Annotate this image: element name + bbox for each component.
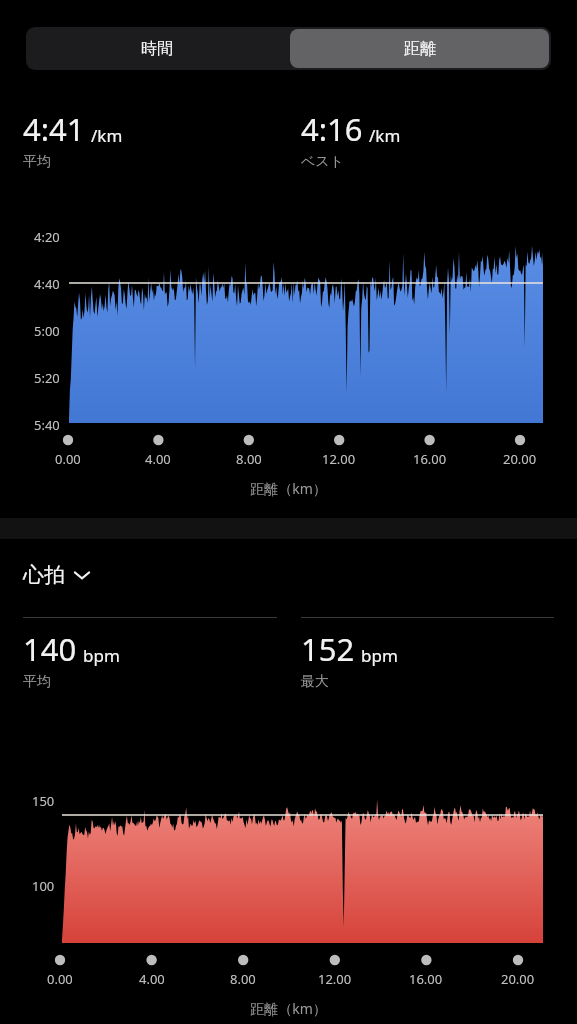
staticText: 心拍	[23, 562, 65, 588]
staticText: 4.00	[139, 970, 165, 988]
staticText: 140	[23, 628, 77, 670]
staticText: 20.00	[501, 970, 535, 988]
staticText: 152	[301, 628, 355, 670]
staticText: 8.00	[230, 970, 256, 988]
staticText: 20.00	[503, 450, 537, 468]
staticText: 平均	[23, 673, 51, 691]
staticText: 16.00	[409, 970, 443, 988]
staticText: 12.00	[318, 970, 352, 988]
staticText: 距離	[404, 39, 436, 59]
staticText: 8.00	[236, 450, 262, 468]
staticText: 5:40	[34, 416, 60, 434]
button[interactable]: 心拍	[23, 562, 99, 588]
staticText: 距離（km）	[250, 999, 327, 1018]
staticText: 12.00	[322, 450, 356, 468]
staticText: bpm	[83, 644, 120, 667]
other: Expand heart rate	[65, 562, 99, 588]
staticText: 4:20	[34, 228, 60, 246]
staticText: 0.00	[47, 970, 73, 988]
staticText: 時間	[141, 39, 173, 59]
button[interactable]: 距離	[290, 29, 549, 68]
staticText: 4:16	[301, 108, 363, 150]
staticText: 16.00	[413, 450, 447, 468]
staticText: 5:20	[34, 369, 60, 387]
staticText: 平均	[23, 153, 51, 171]
staticText: 5:00	[34, 322, 60, 340]
staticText: ベスト	[301, 153, 344, 171]
staticText: 100	[32, 877, 55, 895]
staticText: 4:40	[34, 275, 60, 293]
staticText: 最大	[301, 673, 329, 691]
staticText: 4.00	[145, 450, 171, 468]
staticText: /km	[369, 124, 401, 147]
staticText: bpm	[361, 644, 398, 667]
staticText: 距離（km）	[250, 479, 327, 498]
button[interactable]: 時間	[26, 27, 288, 70]
staticText: 4:41	[23, 108, 85, 150]
staticText: 0.00	[55, 450, 81, 468]
staticText: /km	[91, 124, 123, 147]
staticText: 150	[32, 792, 55, 810]
